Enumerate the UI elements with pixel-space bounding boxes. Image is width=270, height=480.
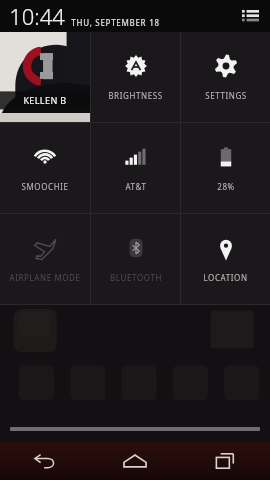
button[interactable]: Home: [90, 442, 180, 480]
button[interactable]: 28%: [181, 123, 270, 213]
staticText: 10:44: [9, 1, 65, 31]
staticText: BRIGHTNESS: [108, 90, 163, 101]
button[interactable]: BLUETOOTH: [91, 214, 180, 304]
button[interactable]: SETTINGS: [181, 32, 270, 122]
staticText: THU, SEPTEMBER 18: [71, 17, 160, 28]
button[interactable]: AIRPLANE MODE: [0, 214, 90, 304]
button[interactable]: SMOOCHIE: [0, 123, 90, 213]
staticText: LOCATION: [203, 272, 248, 283]
staticText: KELLEN B: [23, 94, 67, 106]
button[interactable]: Recent apps: [180, 442, 270, 480]
button[interactable]: LOCATION: [181, 214, 270, 304]
button[interactable]: BRIGHTNESS: [91, 32, 180, 122]
staticText: SETTINGS: [205, 90, 247, 101]
staticText: SMOOCHIE: [21, 181, 69, 192]
staticText: AT&T: [125, 181, 147, 192]
staticText: BLUETOOTH: [110, 272, 162, 283]
button[interactable]: Quick settings list: [238, 4, 262, 28]
button[interactable]: KELLEN B: [0, 32, 90, 122]
staticText: AIRPLANE MODE: [9, 272, 81, 283]
button[interactable]: AT&T: [91, 123, 180, 213]
button[interactable]: Back: [0, 442, 90, 480]
staticText: 28%: [217, 181, 235, 192]
